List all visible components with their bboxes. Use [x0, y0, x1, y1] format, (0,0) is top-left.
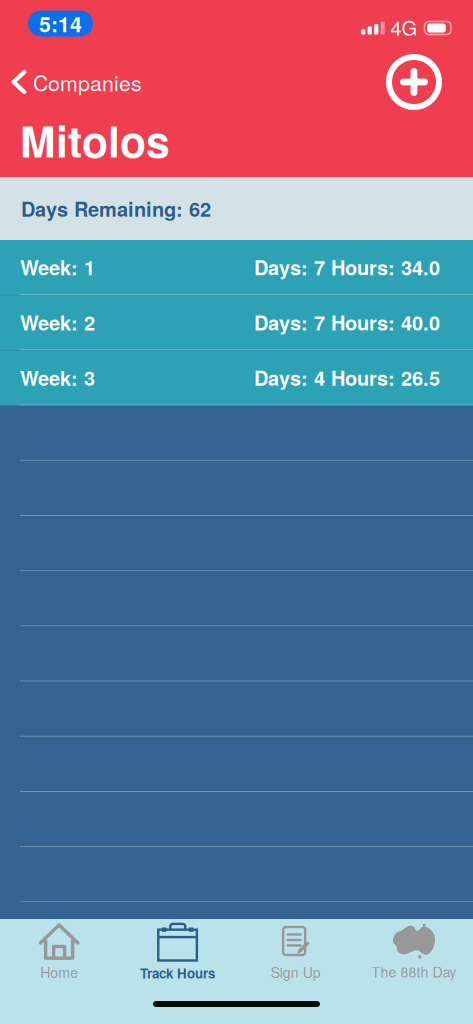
- staticText: Days Remaining: 62: [21, 194, 211, 223]
- staticText: Sign Up: [271, 962, 321, 982]
- button[interactable]: Track Hours: [118, 913, 236, 987]
- staticText: 5:14: [39, 8, 82, 39]
- staticText: Days: 4 Hours: 26.5: [254, 363, 440, 392]
- button[interactable]: Add company: [374, 54, 473, 110]
- button[interactable]: Week: 2: [0, 295, 473, 350]
- button[interactable]: The 88th Day: [355, 914, 473, 985]
- staticText: Home: [40, 962, 78, 982]
- staticText: Days: 7 Hours: 40.0: [254, 308, 440, 337]
- button[interactable]: Week: 1: [0, 240, 473, 295]
- staticText: Days: 7 Hours: 34.0: [254, 253, 440, 281]
- staticText: The 88th Day: [371, 961, 456, 981]
- button[interactable]: Home: [0, 914, 118, 986]
- staticText: Mitolos: [20, 109, 170, 171]
- button[interactable]: Companies: [0, 59, 152, 105]
- button[interactable]: Sign Up: [236, 914, 355, 986]
- staticText: Week: 3: [20, 363, 95, 392]
- staticText: Companies: [33, 67, 142, 97]
- staticText: Week: 1: [20, 253, 95, 281]
- staticText: Week: 2: [20, 308, 95, 337]
- button[interactable]: Week: 3: [0, 350, 473, 406]
- staticText: 4G: [390, 13, 417, 41]
- staticText: Track Hours: [140, 963, 215, 983]
